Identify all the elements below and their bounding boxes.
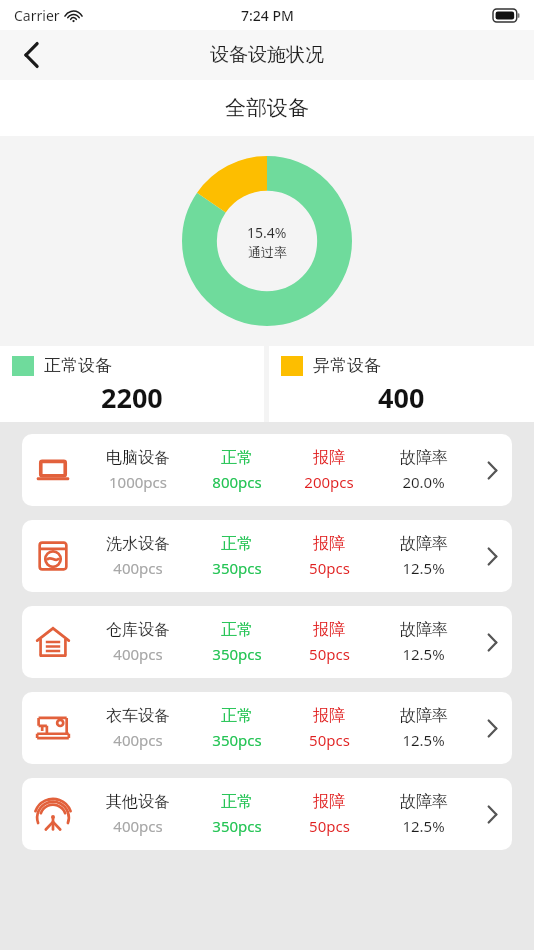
staticText: 200pcs	[304, 472, 354, 492]
button[interactable]: 正常设备	[0, 346, 264, 422]
staticText: 仓库设备	[106, 620, 170, 640]
staticText: 7:24 PM	[241, 6, 294, 25]
staticText: 400pcs	[113, 730, 163, 750]
staticText: 设备设施状况	[210, 43, 324, 67]
staticText: 洗水设备	[106, 534, 170, 554]
staticText: 正常	[221, 620, 253, 640]
staticText: 20.0%	[402, 472, 445, 492]
staticText: 350pcs	[212, 816, 262, 836]
staticText: 800pcs	[212, 472, 262, 492]
staticText: 1000pcs	[109, 472, 167, 492]
staticText: 正常设备	[44, 355, 112, 376]
staticText: 故障率	[400, 534, 448, 554]
staticText: 报障	[313, 534, 345, 554]
staticText: 正常	[221, 706, 253, 726]
staticText: 12.5%	[402, 558, 445, 578]
staticText: 350pcs	[212, 558, 262, 578]
staticText: 故障率	[400, 448, 448, 468]
staticText: 其他设备	[106, 792, 170, 812]
staticText: 故障率	[400, 706, 448, 726]
button[interactable]: 衣车设备	[22, 692, 512, 764]
staticText: 350pcs	[212, 730, 262, 750]
staticText: 50pcs	[309, 816, 350, 836]
button[interactable]: 电脑设备	[22, 434, 512, 506]
button[interactable]: 仓库设备	[22, 606, 512, 678]
staticText: 50pcs	[309, 558, 350, 578]
staticText: 电脑设备	[106, 448, 170, 468]
staticText: 400pcs	[113, 558, 163, 578]
button[interactable]: 洗水设备	[22, 520, 512, 592]
staticText: 故障率	[400, 792, 448, 812]
staticText: 正常	[221, 792, 253, 812]
staticText: Carrier	[14, 6, 60, 25]
staticText: 正常	[221, 448, 253, 468]
staticText: 15.4%	[247, 223, 287, 242]
staticText: 50pcs	[309, 644, 350, 664]
button[interactable]: 异常设备	[269, 346, 534, 422]
staticText: 报障	[313, 620, 345, 640]
staticText: 12.5%	[402, 644, 445, 664]
staticText: 350pcs	[212, 644, 262, 664]
staticText: 通过率	[248, 244, 287, 260]
staticText: 故障率	[400, 620, 448, 640]
staticText: 400pcs	[113, 816, 163, 836]
staticText: 12.5%	[402, 816, 445, 836]
staticText: 400	[378, 379, 425, 416]
staticText: 正常	[221, 534, 253, 554]
staticText: 报障	[313, 448, 345, 468]
staticText: 衣车设备	[106, 706, 170, 726]
staticText: 2200	[101, 379, 163, 416]
staticText: 12.5%	[402, 730, 445, 750]
button[interactable]: 其他设备	[22, 778, 512, 850]
staticText: 全部设备	[225, 95, 309, 121]
staticText: 50pcs	[309, 730, 350, 750]
staticText: 异常设备	[313, 355, 381, 376]
staticText: 报障	[313, 792, 345, 812]
staticText: 报障	[313, 706, 345, 726]
staticText: 400pcs	[113, 644, 163, 664]
button[interactable]: Back	[8, 31, 56, 79]
